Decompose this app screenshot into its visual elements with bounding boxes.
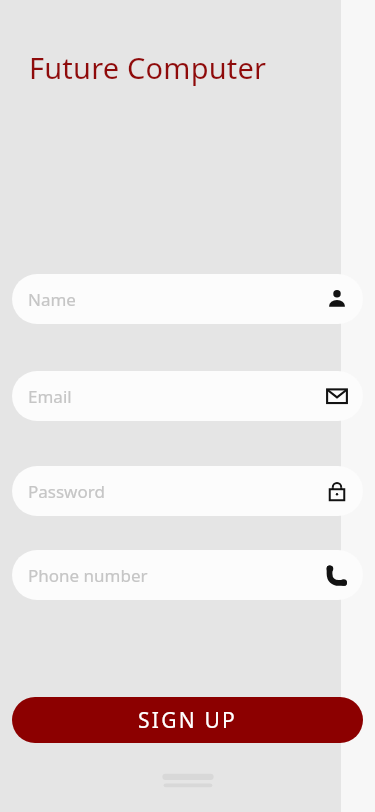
button[interactable]: SIGN UP: [12, 697, 363, 743]
staticText: Phone number: [28, 564, 148, 587]
button[interactable]: Phone number: [12, 550, 363, 600]
staticText: Password: [28, 480, 105, 503]
staticText: Email: [28, 385, 72, 408]
button[interactable]: Name: [12, 274, 363, 324]
button[interactable]: Password: [12, 466, 363, 516]
staticText: Name: [28, 288, 76, 311]
staticText: SIGN UP: [138, 706, 237, 735]
button[interactable]: Email: [12, 371, 363, 421]
staticText: Future Computer: [29, 48, 267, 87]
